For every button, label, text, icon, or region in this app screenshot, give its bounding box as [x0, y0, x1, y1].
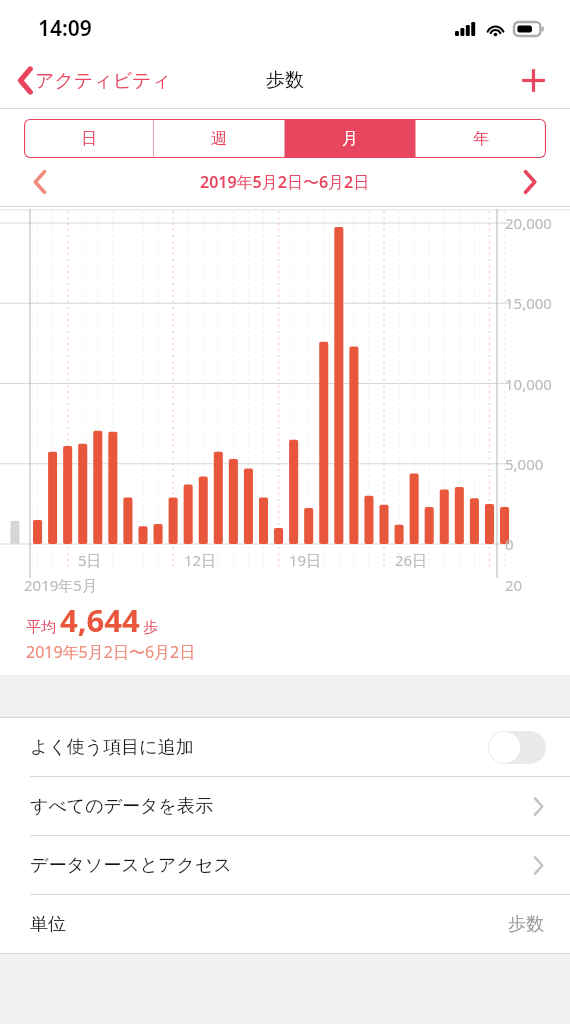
button[interactable]: Previous period	[20, 162, 60, 202]
staticText: 単位	[30, 913, 508, 936]
button[interactable]: 単位	[0, 895, 570, 953]
staticText: 日	[81, 129, 97, 149]
staticText: 月	[342, 129, 358, 149]
button[interactable]: よく使う項目に追加	[0, 718, 570, 776]
staticText: 5日	[78, 550, 102, 570]
staticText: 歩数	[508, 913, 544, 936]
staticText: 10,000	[505, 374, 552, 394]
button[interactable]: Next period	[510, 162, 550, 202]
staticText: 2019年5月2日〜6月2日	[26, 641, 196, 663]
button[interactable]: Add data	[514, 61, 552, 99]
staticText: 15,000	[505, 293, 552, 313]
staticText: データソースとアクセス	[30, 854, 533, 877]
staticText: 0	[505, 534, 514, 554]
other: Add to favorites	[488, 731, 546, 764]
button[interactable]: 週	[154, 119, 284, 158]
staticText: 5,000	[505, 454, 544, 474]
button[interactable]: 年	[416, 119, 546, 158]
staticText: 2019年5月2日〜6月2日	[200, 171, 370, 193]
staticText: 19日	[289, 550, 322, 570]
staticText: 20	[505, 575, 523, 595]
staticText: 年	[473, 129, 489, 149]
button[interactable]: アクティビティ	[14, 61, 176, 100]
staticText: すべてのデータを表示	[30, 795, 533, 818]
button[interactable]: 月	[285, 119, 415, 158]
staticText: アクティビティ	[35, 69, 172, 93]
button[interactable]: 日	[24, 119, 153, 158]
staticText: 週	[211, 129, 227, 149]
button[interactable]: すべてのデータを表示	[0, 777, 570, 835]
button[interactable]: データソースとアクセス	[0, 836, 570, 894]
staticText: 12日	[184, 550, 217, 570]
staticText: 20,000	[505, 213, 552, 233]
staticText: 26日	[395, 550, 428, 570]
staticText: 歩数	[266, 68, 304, 92]
staticText: よく使う項目に追加	[30, 736, 488, 759]
staticText: 平均 4,644 歩	[26, 599, 159, 641]
staticText: 2019年5月	[24, 575, 97, 595]
staticText: 14:09	[38, 14, 92, 43]
